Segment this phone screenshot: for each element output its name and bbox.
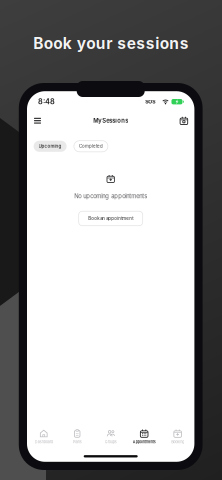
button[interactable]: Menu (29, 113, 45, 129)
staticText: Completed (79, 144, 103, 149)
staticText: 8:48 (38, 97, 55, 106)
staticText: Book an appointment (88, 216, 133, 221)
staticText: Book your sessions (33, 34, 189, 53)
staticText: Appointments (133, 440, 156, 444)
staticText: Booking (171, 440, 184, 444)
button[interactable]: Book an appointment (79, 211, 143, 226)
staticText: Dashboard (35, 440, 53, 444)
staticText: Groups (105, 440, 117, 444)
button[interactable]: Completed (74, 141, 108, 152)
button[interactable]: Plans (60, 429, 94, 444)
button[interactable]: Groups (94, 429, 127, 444)
staticText: SOS (145, 99, 155, 105)
staticText: My Sessions (93, 117, 128, 124)
button[interactable]: Upcoming (34, 141, 67, 152)
staticText: Upcoming (39, 144, 62, 149)
button[interactable]: Dashboard (27, 429, 60, 444)
button[interactable]: Calendar (176, 113, 192, 129)
staticText: No upcoming appointments (74, 193, 147, 200)
staticText: Plans (73, 440, 82, 444)
button[interactable]: Booking (161, 429, 194, 444)
button[interactable]: Appointments (127, 429, 161, 444)
